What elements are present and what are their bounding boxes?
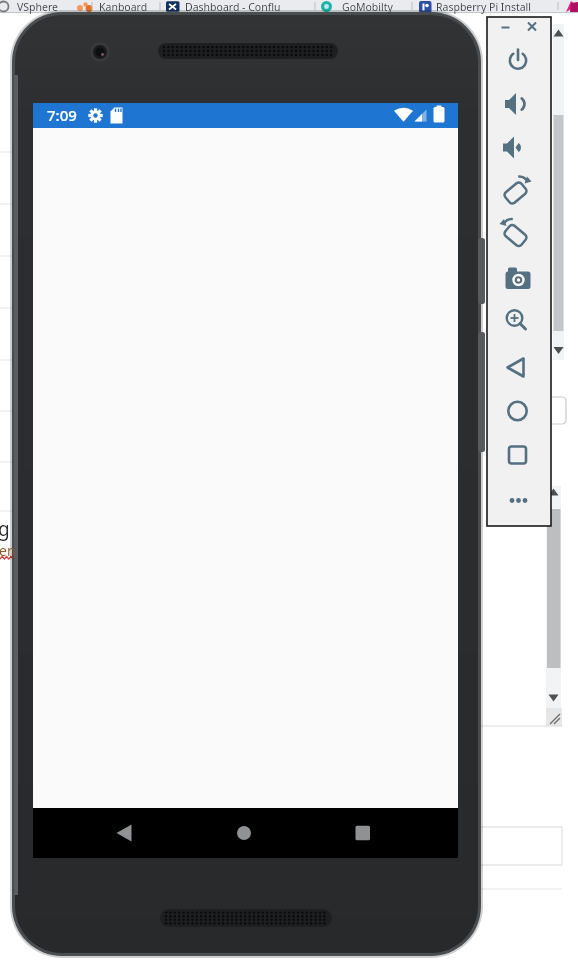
button[interactable] bbox=[500, 349, 536, 385]
staticText: g bbox=[0, 516, 10, 542]
button[interactable] bbox=[162, 0, 315, 13]
button[interactable] bbox=[500, 129, 536, 165]
button[interactable] bbox=[500, 86, 536, 122]
staticText: GoMobilty bbox=[342, 0, 393, 14]
button[interactable] bbox=[500, 261, 536, 297]
staticText: Dashboard - Conflu bbox=[185, 0, 281, 14]
button[interactable] bbox=[493, 17, 515, 38]
button[interactable] bbox=[414, 0, 556, 13]
button[interactable] bbox=[332, 808, 392, 858]
button[interactable] bbox=[500, 482, 536, 518]
button[interactable] bbox=[500, 393, 536, 429]
button[interactable] bbox=[500, 437, 536, 473]
staticText: Raspberry Pi Install bbox=[436, 0, 532, 14]
button[interactable] bbox=[500, 301, 536, 337]
staticText: VSphere bbox=[17, 0, 58, 14]
button[interactable] bbox=[214, 808, 274, 858]
button[interactable] bbox=[521, 17, 543, 38]
button[interactable] bbox=[0, 0, 90, 13]
button[interactable] bbox=[500, 173, 536, 209]
button[interactable] bbox=[317, 0, 412, 13]
button[interactable] bbox=[95, 808, 155, 858]
staticText: Kanboard bbox=[99, 0, 148, 14]
staticText: 7:09 bbox=[47, 105, 77, 125]
button[interactable] bbox=[500, 42, 536, 78]
staticText: en bbox=[0, 541, 16, 560]
button[interactable] bbox=[93, 0, 160, 13]
button[interactable] bbox=[500, 217, 536, 253]
